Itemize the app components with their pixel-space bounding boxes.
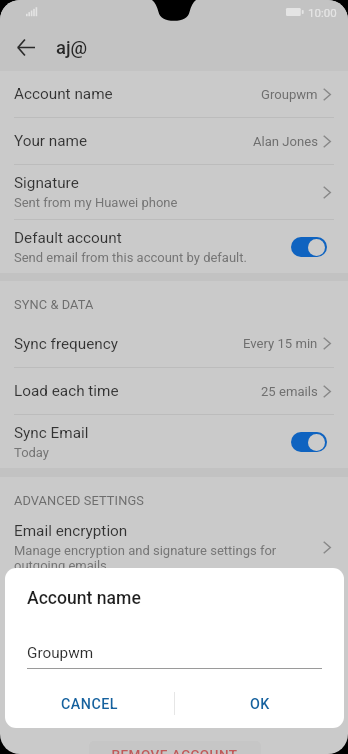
button[interactable]: Default account [0, 220, 348, 273]
button[interactable]: Toggle [291, 432, 327, 452]
staticText: Signature [14, 174, 79, 192]
staticText: Manage encryption and signature settings… [14, 543, 277, 558]
staticText: Send email from this account by default. [14, 250, 247, 265]
button[interactable]: Load each time [0, 368, 348, 414]
button[interactable] [89, 741, 261, 754]
staticText: Sync Email [14, 424, 89, 442]
staticText: Load each time [14, 382, 119, 400]
staticText: Sent from my Huawei phone [14, 195, 178, 210]
button[interactable]: CANCEL [5, 687, 174, 721]
staticText: outgoing emails [14, 558, 107, 573]
button[interactable]: Signature [0, 165, 348, 219]
staticText: Sync frequency [14, 335, 118, 353]
staticText: Groupwm [261, 87, 318, 102]
staticText: Your name [14, 132, 88, 150]
button[interactable]: Your name [0, 118, 348, 164]
staticText: Groupwm [27, 644, 94, 662]
staticText: aj@ [56, 37, 88, 59]
staticText: 25 emails [261, 384, 318, 399]
staticText: Alan Jones [253, 134, 318, 149]
staticText: OK [250, 696, 270, 713]
button[interactable]: Toggle [291, 237, 327, 257]
staticText: Account name [14, 85, 113, 103]
staticText: Email encryption [14, 522, 128, 540]
button[interactable]: Account name [0, 71, 348, 117]
staticText: CANCEL [61, 696, 119, 713]
button[interactable]: OK [175, 687, 344, 721]
staticText: Every 15 min [243, 336, 318, 351]
staticText: Account name [27, 588, 141, 609]
staticText: Default account [14, 229, 122, 247]
button[interactable]: Sync frequency [0, 320, 348, 367]
staticText: SYNC & DATA [14, 297, 94, 312]
staticText: ADVANCED SETTINGS [14, 493, 144, 508]
button[interactable]: Email encryption [0, 516, 348, 578]
staticText: 10:00 [308, 6, 337, 19]
button[interactable]: Back [0, 24, 51, 71]
button[interactable]: Sync Email [0, 415, 348, 468]
staticText: REMOVE ACCOUNT [111, 746, 238, 754]
staticText: Today [14, 445, 50, 460]
